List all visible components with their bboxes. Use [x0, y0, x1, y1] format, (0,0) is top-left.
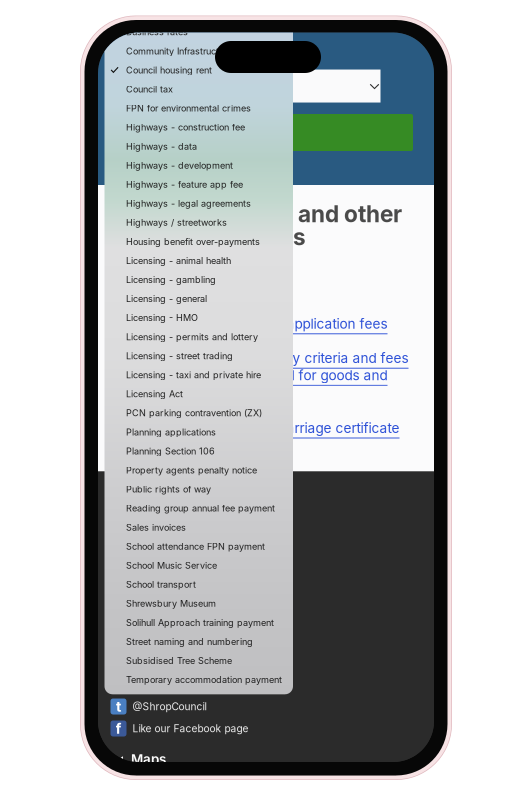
staticText: Licensing - taxi and private hire: [126, 369, 261, 380]
button[interactable]: Highways / streetworks: [104, 213, 293, 232]
button[interactable]: Council housing rent: [104, 61, 293, 80]
button[interactable]: Housing benefit over-payments: [104, 232, 293, 251]
staticText: School Music Service: [126, 560, 217, 571]
staticText: Licensing - general: [126, 293, 207, 304]
button[interactable]: School attendance FPN payment: [104, 537, 293, 556]
staticText: Street naming and numbering: [126, 636, 253, 647]
staticText: School transport: [126, 579, 196, 590]
staticText: Licensing - animal health: [126, 255, 231, 266]
staticText: Highways - feature app fee: [126, 179, 243, 190]
staticText: Highways - construction fee: [126, 122, 245, 133]
button[interactable]: Pay for a birth, death or marriage certi…: [119, 420, 399, 438]
staticText: Sales invoices: [126, 522, 186, 533]
staticText: Reading group annual fee payment: [126, 503, 275, 514]
staticText: Maps: [131, 751, 166, 767]
button[interactable]: Public rights of way: [104, 480, 293, 499]
button[interactable]: School Music Service: [104, 556, 293, 575]
button[interactable]: Pay for your planning pre-application fe…: [119, 315, 387, 334]
button[interactable]: Planning applications: [104, 423, 293, 442]
staticText: Licensing - street trading: [126, 350, 233, 361]
button[interactable]: Business rates: [104, 22, 293, 42]
staticText: School attendance FPN payment: [126, 541, 265, 552]
staticText: Pay for blue badge disability criteria a…: [119, 350, 408, 366]
staticText: PCN parking contravention (ZX): [126, 408, 262, 419]
staticText: Licensing - permits and lottery: [126, 331, 258, 342]
button[interactable]: Solihull Approach training payment: [104, 613, 293, 632]
staticText: @ShropCouncil: [132, 700, 206, 713]
button[interactable]: t: [110, 697, 206, 715]
staticText: bills and fines: [155, 223, 306, 251]
staticText: Housing benefit over-payments: [126, 236, 260, 247]
button[interactable]: Sales invoices: [104, 518, 293, 537]
button[interactable]: Licensing - gambling: [104, 270, 293, 289]
staticText: Property agents penalty notice: [126, 465, 257, 476]
button[interactable]: Licensing - HMO: [104, 308, 293, 327]
staticText: Community Infrastructure: [126, 46, 232, 57]
staticText: Planning applications: [126, 427, 216, 438]
staticText: Pay for your planning pre-application fe…: [119, 315, 387, 332]
button[interactable]: PCN parking contravention (ZX): [104, 404, 293, 423]
staticText: Highways / streetworks: [126, 217, 227, 228]
staticText: Shrewsbury Museum: [126, 598, 216, 609]
button[interactable]: Licensing - animal health: [104, 251, 293, 270]
staticText: Temporary accommodation payment: [126, 674, 282, 685]
staticText: services: [119, 384, 173, 401]
button[interactable]: services: [119, 384, 173, 403]
staticText: Subsidised Tree Scheme: [126, 655, 232, 666]
button[interactable]: Planning Section 106: [104, 442, 293, 461]
button[interactable]: Highways - construction fee: [104, 118, 293, 137]
staticText: Planning Section 106: [126, 446, 215, 457]
staticText: Like our Facebook page: [132, 722, 248, 735]
button[interactable]: Licensing - permits and lottery: [104, 327, 293, 346]
staticText: Highways - development: [126, 160, 233, 171]
staticText: Pay for council tax and other: [93, 200, 402, 228]
button[interactable]: Street naming and numbering: [104, 632, 293, 651]
staticText: Highways - data: [126, 141, 197, 152]
button[interactable]: Highways - legal agreements: [104, 194, 293, 213]
button[interactable]: Licensing - street trading: [104, 346, 293, 365]
staticText: Highways - legal agreements: [126, 198, 251, 209]
button[interactable]: Subsidised Tree Scheme: [104, 651, 293, 670]
staticText: Pay for a birth, death or marriage certi…: [119, 420, 399, 436]
staticText: Licensing - gambling: [126, 274, 216, 285]
staticText: Council housing rent: [126, 65, 212, 76]
button[interactable]: f: [110, 719, 248, 737]
button[interactable]: FPN for environmental crimes: [104, 99, 293, 118]
button[interactable]: Licensing Act: [104, 384, 293, 404]
button[interactable]: Highways - feature app fee: [104, 175, 293, 194]
button[interactable]: Community Infrastructure: [104, 42, 293, 61]
staticText: Solihull Approach training payment: [126, 617, 274, 628]
button[interactable]: Temporary accommodation payment: [104, 670, 293, 689]
button[interactable]: Highways - development: [104, 156, 293, 175]
button[interactable]: Property agents penalty notice: [104, 461, 293, 480]
staticText: f: [115, 720, 121, 737]
button[interactable]: Maps: [116, 745, 246, 773]
staticText: Licensing Act: [126, 388, 183, 399]
button[interactable]: Reading group annual fee payment: [104, 499, 293, 518]
staticText: FPN for environmental crimes: [126, 103, 251, 114]
button[interactable]: Pay for blue badge disability criteria a…: [119, 350, 408, 369]
staticText: Licensing - HMO: [126, 312, 198, 323]
staticText: Public rights of way: [126, 484, 211, 495]
staticText: t: [116, 698, 121, 715]
button[interactable]: Highways - data: [104, 137, 293, 156]
button[interactable]: Pay an invoice to the council for goods …: [111, 367, 387, 386]
staticText: Pay an invoice to the council for goods …: [111, 367, 387, 383]
button[interactable]: Licensing - taxi and private hire: [104, 365, 293, 385]
button[interactable]: Licensing - general: [104, 289, 293, 308]
button[interactable]: School transport: [104, 575, 293, 594]
button[interactable]: Shrewsbury Museum: [104, 594, 293, 613]
staticText: Council tax: [126, 84, 173, 95]
button[interactable]: Council tax: [104, 80, 293, 99]
button[interactable]: [119, 69, 380, 102]
staticText: Business rates: [126, 27, 188, 38]
button[interactable]: [119, 114, 413, 151]
